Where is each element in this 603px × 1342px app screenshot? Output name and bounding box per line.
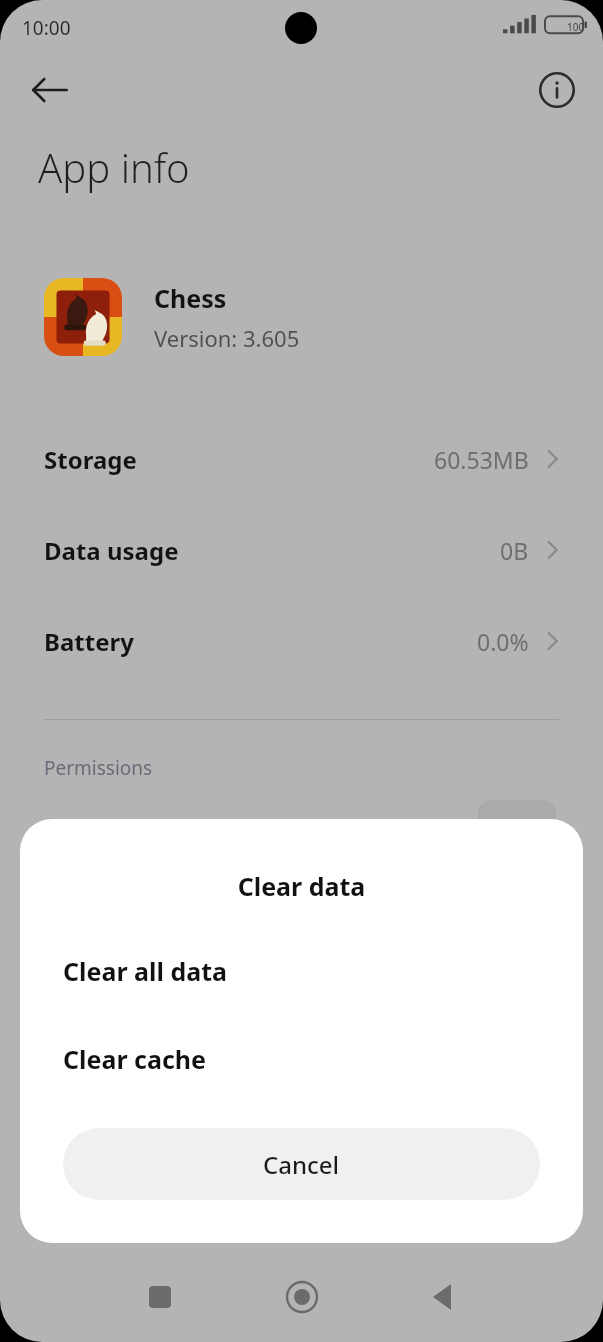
button[interactable]: App details bbox=[535, 68, 579, 112]
staticText: Cancel bbox=[263, 1148, 340, 1181]
staticText: Clear data bbox=[20, 869, 583, 903]
staticText: 10:00 bbox=[22, 15, 71, 41]
button[interactable]: Recent apps bbox=[134, 1271, 186, 1323]
button[interactable]: Cancel bbox=[63, 1128, 540, 1200]
staticText: Data usage bbox=[44, 534, 179, 567]
staticText: Battery bbox=[44, 625, 134, 658]
button[interactable]: Data usage bbox=[0, 518, 603, 582]
staticText: Permissions bbox=[44, 755, 153, 781]
button[interactable]: Back bbox=[28, 68, 72, 112]
button[interactable]: Storage bbox=[0, 427, 603, 491]
button[interactable]: Back bbox=[417, 1271, 469, 1323]
staticText: 0.0% bbox=[477, 626, 529, 657]
staticText: 100 bbox=[567, 20, 585, 34]
staticText: 60.53MB bbox=[434, 444, 529, 475]
staticText: Clear all data bbox=[63, 954, 228, 988]
staticText: App info bbox=[38, 140, 190, 194]
button[interactable]: Clear cache bbox=[20, 1025, 583, 1093]
staticText: Clear cache bbox=[63, 1042, 207, 1076]
staticText: Version: 3.605 bbox=[154, 323, 300, 353]
button[interactable]: Clear all data bbox=[20, 937, 583, 1005]
staticText: Chess bbox=[154, 281, 227, 315]
button[interactable]: Battery bbox=[0, 609, 603, 673]
staticText: 0B bbox=[500, 535, 529, 566]
staticText: Storage bbox=[44, 443, 137, 476]
button[interactable]: Home bbox=[276, 1271, 328, 1323]
